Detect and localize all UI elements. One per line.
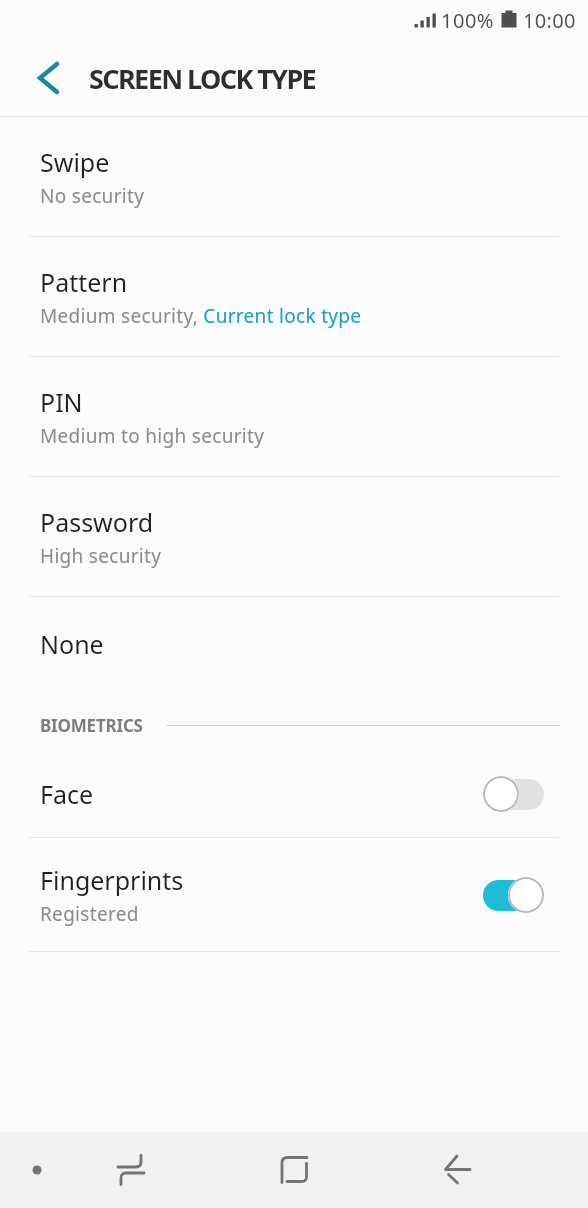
staticText: 10:00 bbox=[523, 7, 576, 34]
staticText: Medium security, Current lock type bbox=[40, 303, 362, 329]
staticText: Face bbox=[40, 777, 94, 811]
staticText: PIN bbox=[40, 385, 83, 419]
staticText: Pattern bbox=[40, 265, 128, 299]
staticText: Password bbox=[40, 505, 154, 539]
button[interactable] bbox=[274, 1150, 314, 1190]
button[interactable]: Pattern bbox=[0, 237, 588, 356]
button[interactable] bbox=[24, 1157, 50, 1183]
staticText: Fingerprints bbox=[40, 863, 184, 897]
staticText: High security bbox=[40, 543, 162, 569]
staticText: None bbox=[40, 627, 104, 661]
button[interactable]: Swipe bbox=[0, 117, 588, 236]
staticText: SCREEN LOCK TYPE bbox=[89, 60, 316, 97]
button[interactable] bbox=[0, 40, 63, 116]
button[interactable] bbox=[438, 1150, 478, 1190]
button[interactable] bbox=[483, 776, 544, 812]
button[interactable]: Face bbox=[0, 750, 588, 837]
button[interactable]: None bbox=[0, 597, 588, 690]
button[interactable]: Password bbox=[0, 477, 588, 596]
button[interactable] bbox=[483, 877, 544, 913]
staticText: No security bbox=[40, 183, 145, 209]
staticText: Swipe bbox=[40, 145, 110, 179]
staticText: Registered bbox=[40, 901, 139, 927]
button[interactable]: Fingerprints bbox=[0, 838, 588, 951]
button[interactable] bbox=[111, 1150, 151, 1190]
button[interactable]: PIN bbox=[0, 357, 588, 476]
staticText: BIOMETRICS bbox=[40, 714, 143, 737]
staticText: Medium to high security bbox=[40, 423, 265, 449]
staticText: 100% bbox=[441, 7, 494, 34]
